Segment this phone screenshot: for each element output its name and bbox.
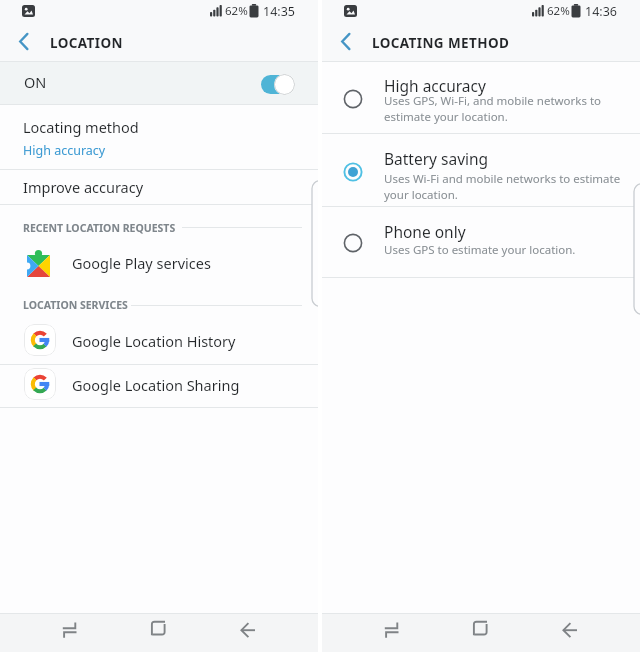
button[interactable]: Battery saving bbox=[322, 134, 640, 206]
button[interactable] bbox=[383, 620, 401, 640]
button[interactable]: Google Location Sharing bbox=[0, 365, 318, 407]
button[interactable]: Phone only bbox=[322, 207, 640, 277]
staticText: 14:35 bbox=[263, 3, 295, 20]
staticText: Uses Wi-Fi and mobile networks to estima… bbox=[384, 171, 621, 203]
staticText: ON bbox=[24, 72, 47, 92]
button[interactable]: Google Play services bbox=[0, 236, 318, 292]
button[interactable]: Locating method bbox=[0, 105, 318, 169]
staticText: Google Location History bbox=[72, 331, 236, 351]
staticText: Google Location Sharing bbox=[72, 375, 240, 395]
staticText: RECENT LOCATION REQUESTS bbox=[23, 221, 176, 235]
button[interactable] bbox=[150, 620, 167, 637]
staticText: 62% bbox=[225, 3, 248, 19]
staticText: High accuracy bbox=[384, 75, 486, 96]
staticText: High accuracy bbox=[23, 142, 106, 159]
staticText: Improve accuracy bbox=[23, 177, 144, 197]
button[interactable]: Google Location History bbox=[0, 319, 318, 364]
staticText: 14:36 bbox=[585, 3, 617, 20]
staticText: 62% bbox=[547, 3, 570, 19]
staticText: Phone only bbox=[384, 221, 466, 242]
staticText: Battery saving bbox=[384, 148, 489, 169]
staticText: Uses GPS, Wi-Fi, and mobile networks to … bbox=[384, 93, 602, 125]
button[interactable] bbox=[341, 33, 351, 50]
staticText: Uses GPS to estimate your location. bbox=[384, 242, 576, 258]
button[interactable]: High accuracy bbox=[322, 62, 640, 133]
staticText: LOCATION SERVICES bbox=[23, 298, 128, 312]
staticText: LOCATION bbox=[50, 34, 123, 52]
button[interactable] bbox=[19, 33, 29, 50]
button[interactable]: Improve accuracy bbox=[0, 170, 318, 204]
staticText: Google Play services bbox=[72, 253, 211, 273]
staticText: Locating method bbox=[23, 117, 139, 137]
button[interactable] bbox=[240, 622, 256, 638]
button[interactable] bbox=[61, 620, 79, 640]
button[interactable] bbox=[472, 620, 489, 637]
button[interactable]: ON bbox=[0, 62, 318, 104]
button[interactable] bbox=[562, 622, 578, 638]
staticText: LOCATING METHOD bbox=[372, 34, 510, 52]
